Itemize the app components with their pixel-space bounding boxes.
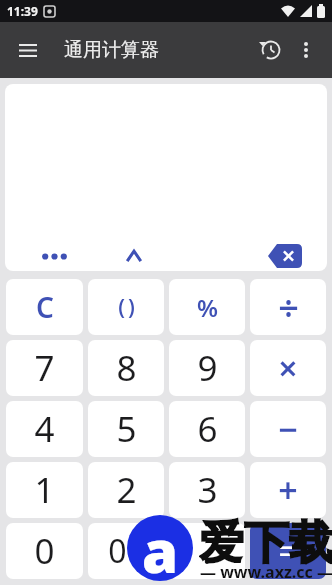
staticText: 00: [108, 529, 145, 573]
button[interactable]: .: [169, 523, 245, 579]
button[interactable]: −: [250, 401, 326, 457]
staticText: 2: [116, 466, 137, 514]
staticText: 8: [116, 344, 137, 392]
staticText: =: [278, 528, 298, 574]
staticText: 5: [116, 405, 137, 453]
button[interactable]: ×: [250, 340, 326, 396]
staticText: a: [142, 515, 179, 577]
button[interactable]: [265, 243, 305, 269]
staticText: C: [36, 288, 54, 326]
button[interactable]: (): [88, 279, 164, 335]
button[interactable]: =: [250, 523, 326, 579]
staticText: 通用计算器: [64, 38, 159, 62]
button[interactable]: 1: [6, 462, 83, 518]
staticText: 6: [197, 405, 218, 453]
button[interactable]: 5: [88, 401, 164, 457]
staticText: −: [278, 406, 298, 452]
staticText: %: [197, 291, 218, 324]
button[interactable]: 00: [88, 523, 164, 579]
staticText: — www.axz.cc —: [200, 561, 332, 581]
staticText: ×: [278, 345, 298, 391]
button[interactable]: 4: [6, 401, 83, 457]
button[interactable]: ÷: [250, 279, 326, 335]
button[interactable]: [0, 22, 56, 78]
button[interactable]: 3: [169, 462, 245, 518]
staticText: (): [118, 293, 138, 322]
button[interactable]: 0: [6, 523, 83, 579]
button[interactable]: [292, 30, 332, 70]
button[interactable]: [120, 245, 148, 267]
staticText: 9: [197, 344, 218, 392]
staticText: .: [202, 527, 212, 575]
staticText: 爱下载: [199, 515, 332, 572]
staticText: 11:39: [7, 3, 38, 19]
staticText: 3: [197, 466, 218, 514]
staticText: +: [278, 467, 298, 513]
staticText: 0: [34, 527, 55, 575]
staticText: ÷: [278, 283, 299, 332]
button[interactable]: 8: [88, 340, 164, 396]
staticText: 4: [34, 405, 55, 453]
button[interactable]: 9: [169, 340, 245, 396]
button[interactable]: [39, 245, 69, 267]
staticText: 7: [34, 344, 55, 392]
button[interactable]: 2: [88, 462, 164, 518]
button[interactable]: %: [169, 279, 245, 335]
button[interactable]: 6: [169, 401, 245, 457]
staticText: 1: [34, 466, 55, 514]
button[interactable]: +: [250, 462, 326, 518]
button[interactable]: C: [6, 279, 83, 335]
button[interactable]: 7: [6, 340, 83, 396]
button[interactable]: [244, 26, 292, 74]
